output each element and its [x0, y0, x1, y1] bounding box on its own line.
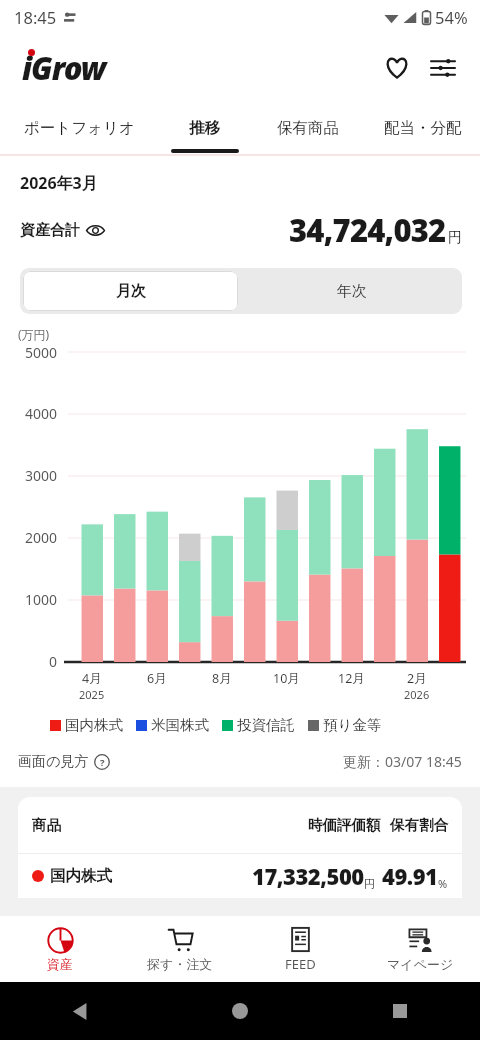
staticText: 3000 — [25, 466, 58, 485]
button[interactable]: FEED — [240, 916, 360, 982]
staticText: 月次 — [116, 282, 146, 301]
staticText: 17,332,500 — [252, 861, 364, 891]
button[interactable]: 資産 — [0, 916, 120, 982]
button[interactable]: 推移 — [159, 102, 250, 154]
staticText: 1000 — [25, 590, 58, 609]
staticText: 国内株式 — [65, 716, 123, 734]
staticText: 保有商品 — [277, 118, 339, 138]
staticText: 2025 — [79, 687, 105, 702]
staticText: 12月 — [338, 670, 365, 687]
staticText: 8月 — [212, 670, 232, 687]
other: 金額の表示切替 — [86, 221, 105, 240]
other: ヘルプ — [94, 754, 110, 770]
staticText: 配当・分配 — [384, 118, 462, 138]
staticText: 資産 — [47, 956, 73, 972]
staticText: 投資信託 — [237, 716, 295, 734]
staticText: ? — [100, 756, 105, 769]
button[interactable]: 探す・注文 — [120, 916, 240, 982]
staticText: 2026 — [404, 687, 430, 702]
staticText: 預り金等 — [323, 716, 382, 734]
staticText: 米国株式 — [151, 716, 209, 734]
staticText: 2026年3月 — [20, 172, 98, 194]
staticText: 円 — [364, 877, 375, 891]
staticText: 18:45 — [14, 6, 57, 28]
staticText: iGrow — [22, 47, 106, 89]
staticText: 5000 — [25, 343, 58, 362]
staticText: 10月 — [273, 670, 300, 687]
staticText: 探す・注文 — [147, 956, 213, 972]
staticText: 円 — [448, 229, 462, 247]
button[interactable]: ポートフォリオ — [0, 102, 159, 154]
button[interactable]: 国内株式 — [32, 854, 448, 898]
staticText: (万円) — [18, 326, 50, 342]
staticText: 資産合計 — [20, 221, 80, 240]
staticText: 推移 — [189, 118, 220, 138]
staticText: 4000 — [25, 404, 58, 423]
staticText: 49.91 — [382, 861, 438, 891]
staticText: 6月 — [147, 670, 167, 687]
staticText: ポートフォリオ — [24, 118, 135, 138]
staticText: 画面の見方 — [18, 753, 89, 771]
button[interactable]: お気に入り — [374, 45, 420, 91]
button[interactable]: 月次 — [23, 271, 238, 311]
button[interactable]: 設定 — [420, 45, 466, 91]
button[interactable]: マイページ — [360, 916, 480, 982]
staticText: 34,724,032 — [289, 209, 446, 251]
staticText: 54% — [435, 6, 468, 28]
staticText: 年次 — [337, 282, 367, 301]
button[interactable]: 画面の見方 — [18, 753, 110, 771]
button[interactable]: 保有商品 — [250, 102, 365, 154]
button[interactable]: 配当・分配 — [365, 102, 480, 154]
button[interactable]: 資産合計 — [20, 221, 105, 240]
button[interactable]: 年次 — [241, 268, 462, 314]
staticText: % — [438, 876, 448, 891]
staticText: 更新：03/07 18:45 — [343, 752, 462, 771]
staticText: マイページ — [387, 956, 454, 972]
staticText: 商品 — [32, 816, 61, 834]
staticText: 国内株式 — [50, 866, 112, 886]
staticText: 時価評価額 — [308, 816, 381, 834]
staticText: 4月 — [82, 670, 102, 687]
staticText: 0 — [49, 652, 58, 671]
staticText: FEED — [285, 955, 316, 973]
staticText: 保有割合 — [390, 816, 448, 834]
staticText: 2000 — [25, 528, 58, 547]
staticText: 2月 — [407, 670, 427, 687]
